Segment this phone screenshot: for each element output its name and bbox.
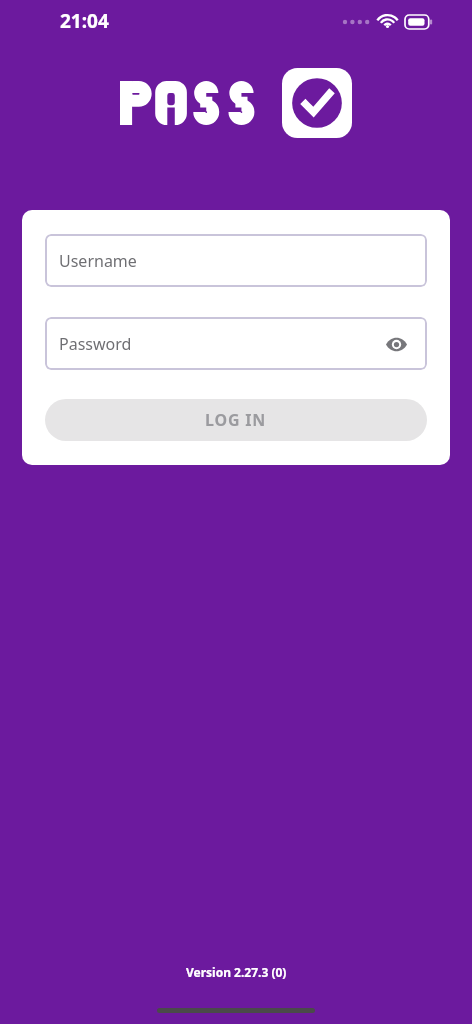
staticText: 21:04: [60, 8, 109, 34]
staticText: Version 2.27.3 (0): [186, 964, 287, 980]
staticText: LOG IN: [205, 409, 267, 431]
button[interactable]: LOG IN: [45, 399, 427, 441]
button[interactable]: Show password: [379, 327, 413, 361]
button[interactable]: Password: [45, 317, 427, 370]
button[interactable]: Username: [45, 234, 427, 287]
staticText: Password: [59, 333, 132, 355]
staticText: Username: [59, 250, 137, 272]
